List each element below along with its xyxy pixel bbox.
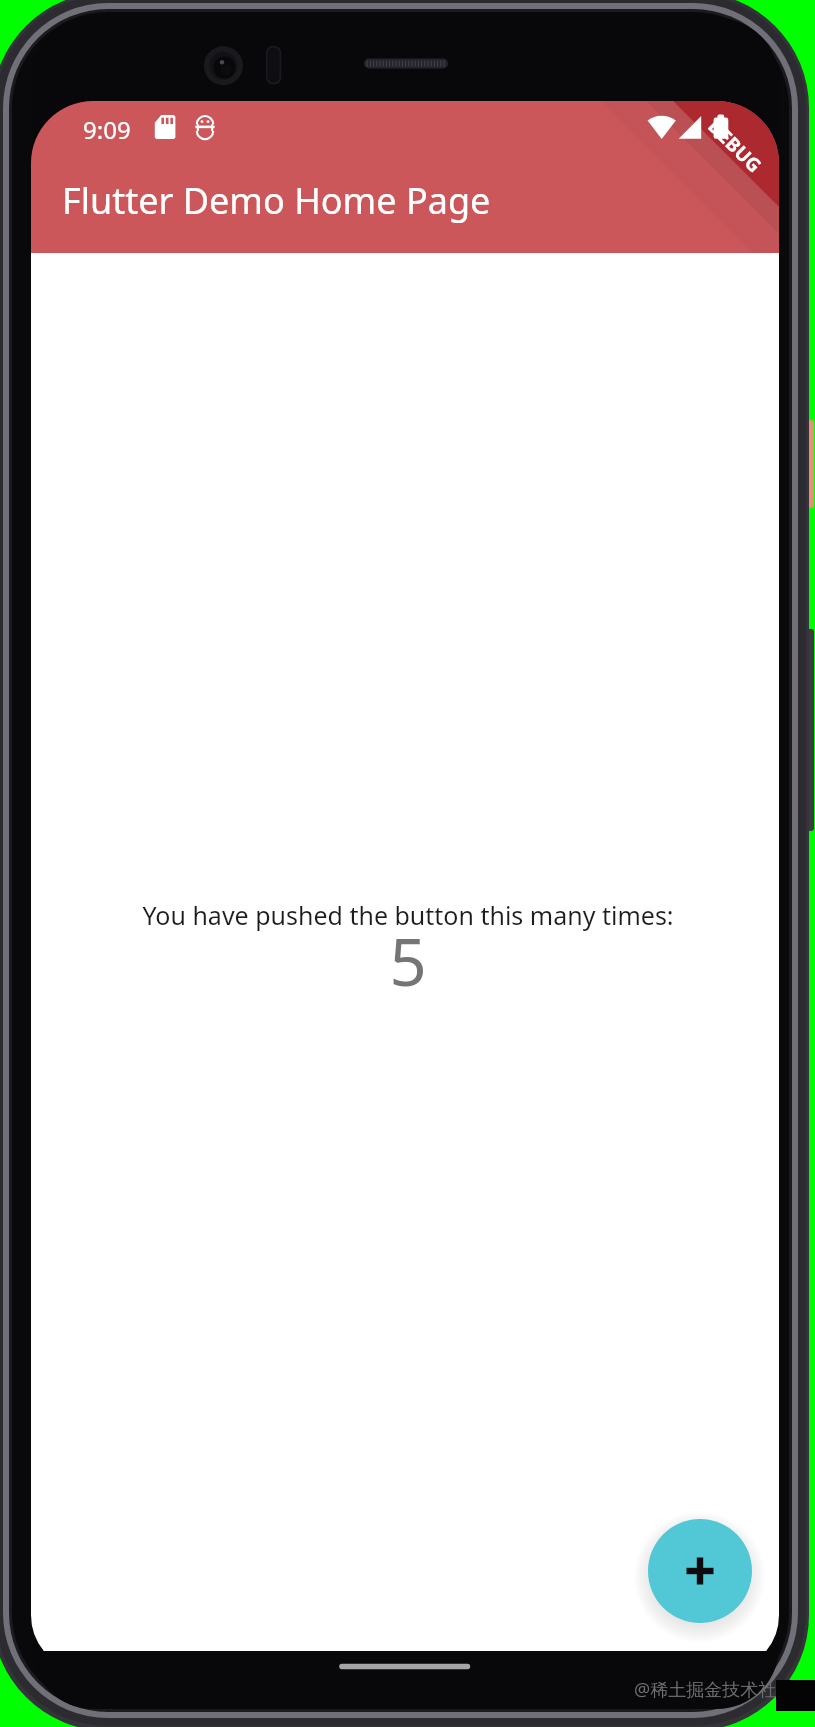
staticText: DEBUG — [702, 113, 768, 179]
staticText: Flutter Demo Home Page — [62, 176, 491, 225]
button[interactable]: Increment — [648, 1519, 752, 1623]
staticText: 9:09 — [83, 113, 131, 146]
button[interactable]: Flutter Demo Home Page — [31, 164, 779, 236]
staticText: You have pushed the button this many tim… — [142, 898, 674, 932]
staticText: 5 — [389, 917, 427, 1006]
staticText: @稀土掘金技术社区 — [634, 1677, 795, 1702]
